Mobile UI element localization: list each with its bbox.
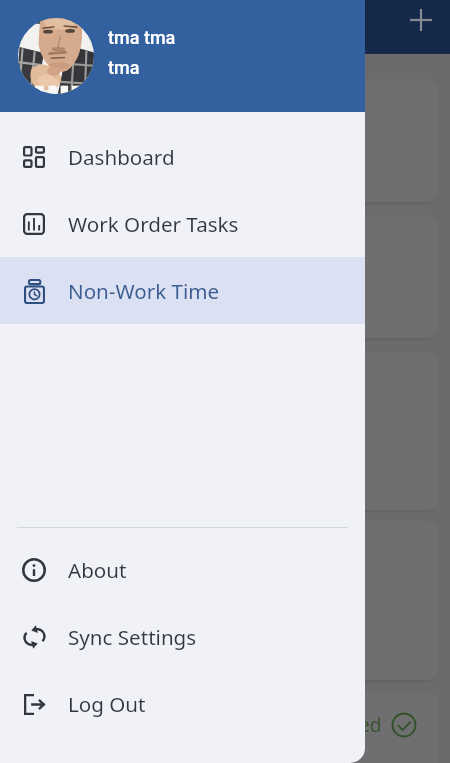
staticText: Sync Settings	[68, 623, 197, 651]
button[interactable]: Log Out	[0, 670, 365, 737]
staticText: About	[68, 556, 127, 584]
staticText: tma	[108, 57, 140, 78]
button[interactable]: Add	[399, 0, 443, 42]
staticText: Dashboard	[68, 143, 175, 171]
staticText: Work Order Tasks	[68, 210, 239, 238]
staticText: Non-Work Time	[68, 277, 220, 305]
button[interactable]: Sync Settings	[0, 603, 365, 670]
button[interactable]: Dashboard	[0, 123, 365, 190]
button[interactable]: Non-Work Time	[0, 257, 365, 324]
staticText: Log Out	[68, 690, 146, 718]
staticText: tma tma	[108, 27, 176, 48]
button[interactable]: Work Order Tasks	[0, 190, 365, 257]
button[interactable]: About	[0, 536, 365, 603]
staticText: ed	[359, 712, 382, 738]
